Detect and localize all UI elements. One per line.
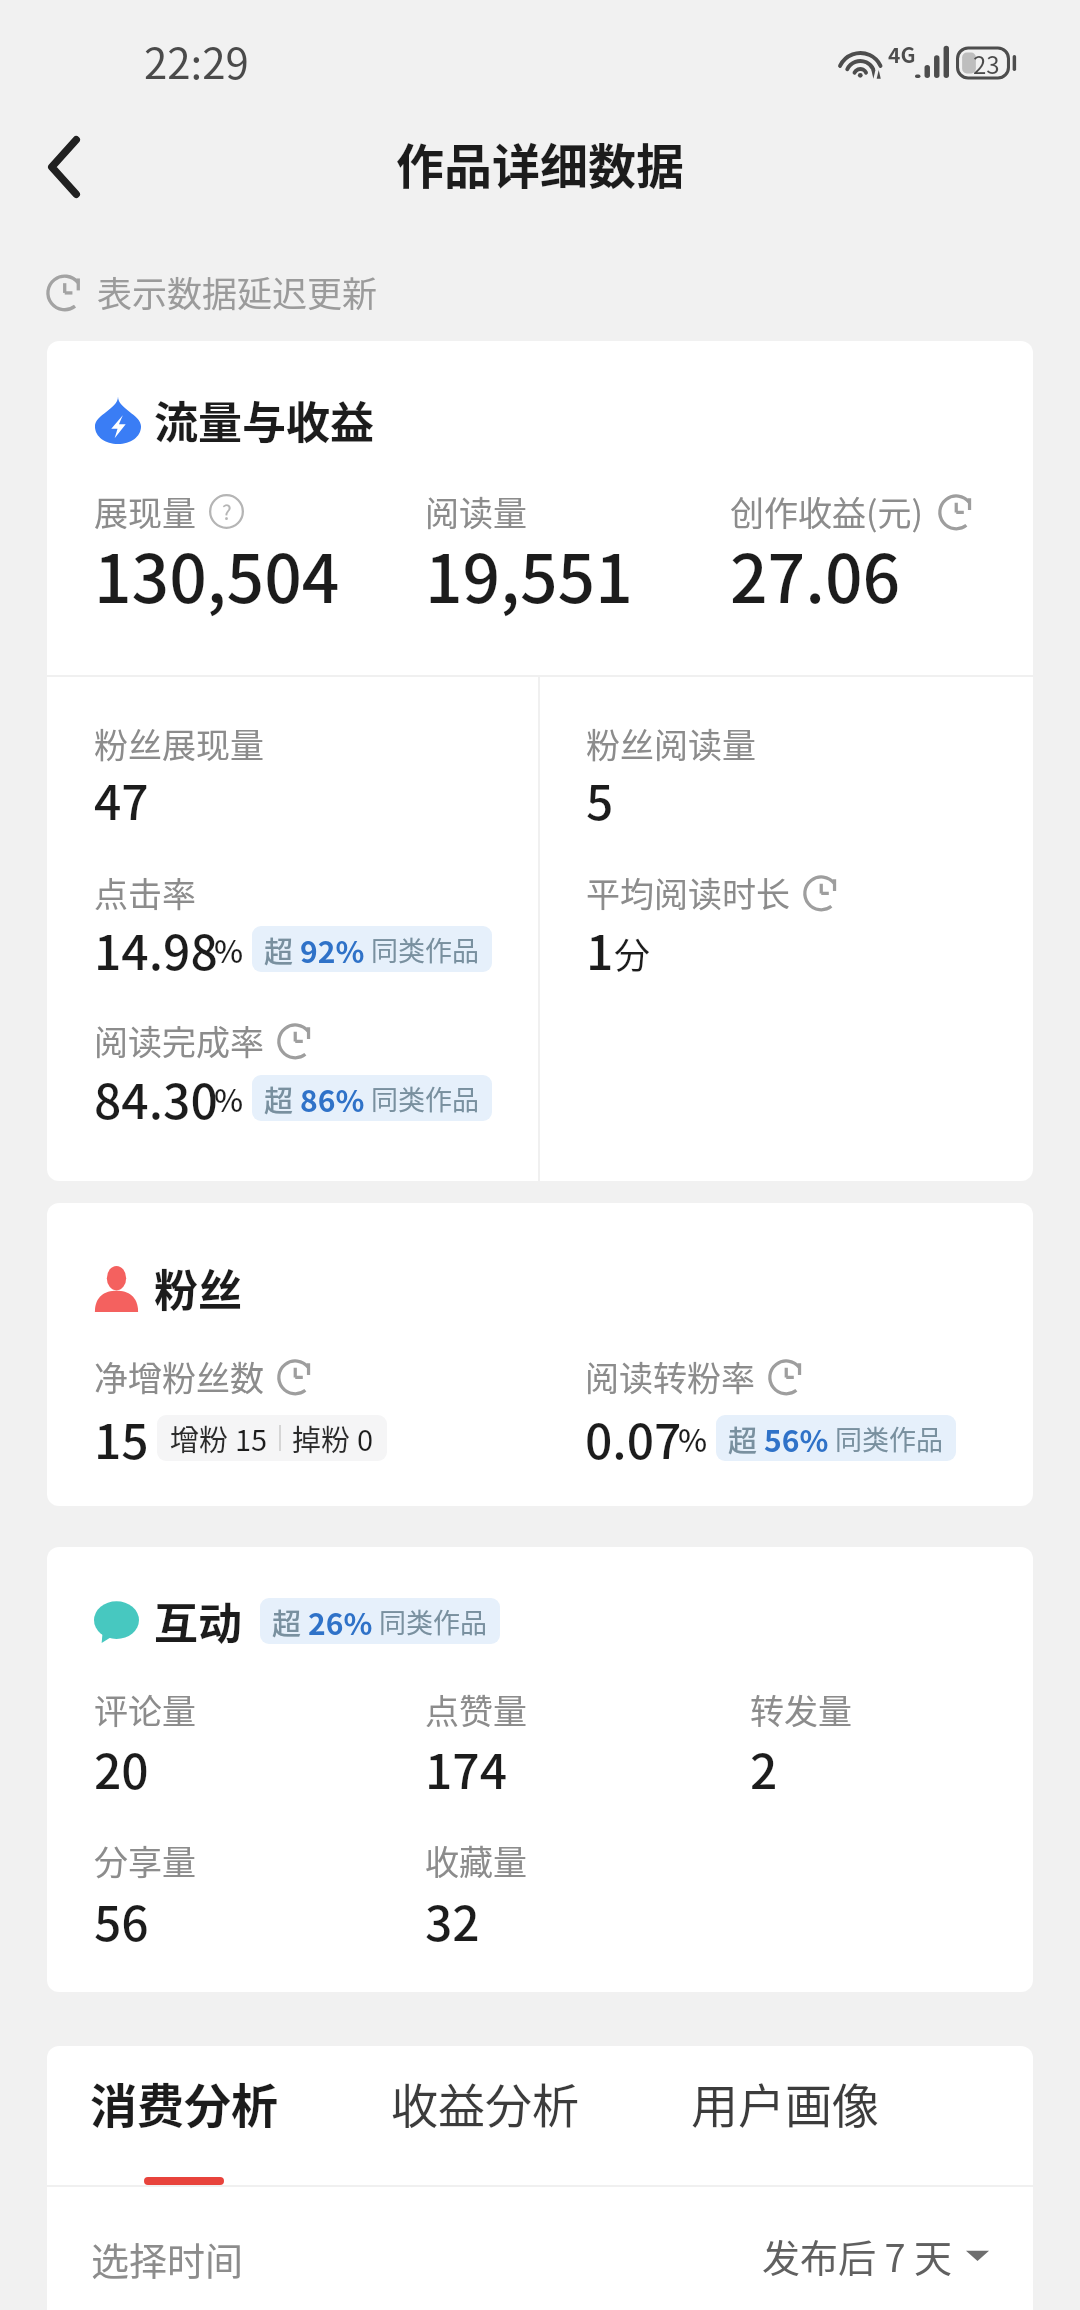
- staticText: 增粉: [170, 1417, 235, 1459]
- staticText: 26%: [308, 1600, 373, 1643]
- staticText: 130,504: [94, 526, 340, 622]
- staticText: ?: [222, 496, 232, 525]
- staticText: 4G: [888, 39, 916, 69]
- staticText: 同类作品: [365, 1079, 480, 1118]
- staticText: 阅读量: [425, 487, 527, 536]
- staticText: 粉丝展现量: [94, 719, 264, 768]
- staticText: 作品详细数据: [396, 128, 685, 198]
- staticText: 84.30: [94, 1063, 218, 1133]
- staticText: 点击率: [94, 868, 196, 917]
- staticText: 15: [235, 1417, 268, 1459]
- staticText: 19,551: [425, 526, 633, 622]
- staticText: 点赞量: [425, 1685, 527, 1734]
- staticText: 用户画像: [691, 2068, 879, 2136]
- staticText: 5: [586, 764, 614, 834]
- staticText: 收藏量: [425, 1836, 527, 1885]
- staticText: 阅读转粉率: [585, 1352, 755, 1401]
- staticText: 14.98: [94, 914, 218, 984]
- button[interactable]: Back: [16, 119, 112, 215]
- staticText: 粉丝阅读量: [586, 719, 756, 768]
- staticText: 86%: [300, 1077, 365, 1120]
- staticText: 分: [614, 927, 651, 979]
- staticText: 掉粉: [292, 1417, 357, 1459]
- staticText: 0.07: [585, 1403, 682, 1473]
- staticText: 1: [586, 914, 614, 984]
- staticText: 超: [264, 1078, 300, 1120]
- button[interactable]: 展现量说明: [209, 494, 244, 529]
- staticText: %: [214, 1076, 244, 1121]
- staticText: 收益分析: [391, 2068, 579, 2136]
- staticText: %: [678, 1416, 708, 1461]
- staticText: 创作收益(元): [730, 487, 923, 536]
- staticText: 平均阅读时长: [586, 868, 790, 917]
- staticText: 47: [94, 764, 149, 834]
- button[interactable]: 用户画像: [691, 2068, 879, 2185]
- staticText: 粉丝: [154, 1256, 242, 1320]
- staticText: 23: [973, 46, 1000, 81]
- staticText: 22:29: [144, 30, 249, 91]
- staticText: 分享量: [94, 1836, 196, 1885]
- staticText: 超: [728, 1418, 764, 1460]
- staticText: 56: [94, 1885, 149, 1955]
- staticText: 转发量: [750, 1685, 852, 1734]
- button[interactable]: 收益分析: [391, 2068, 579, 2185]
- button[interactable]: 发布后 7 天: [762, 2228, 989, 2283]
- staticText: 同类作品: [373, 1602, 488, 1641]
- staticText: 174: [425, 1733, 508, 1803]
- staticText: 表示数据延迟更新: [97, 266, 378, 317]
- staticText: %: [214, 927, 244, 972]
- staticText: 同类作品: [829, 1419, 944, 1458]
- staticText: 15: [94, 1403, 149, 1473]
- staticText: 0: [357, 1417, 374, 1459]
- staticText: 超: [264, 929, 300, 971]
- staticText: 27.06: [730, 526, 901, 622]
- staticText: 32: [425, 1885, 480, 1955]
- staticText: 发布后 7 天: [762, 2228, 953, 2283]
- staticText: 互动: [154, 1589, 242, 1653]
- staticText: 消费分析: [90, 2068, 278, 2136]
- staticText: 2: [750, 1733, 778, 1803]
- staticText: 净增粉丝数: [94, 1352, 264, 1401]
- staticText: 阅读完成率: [94, 1016, 264, 1065]
- staticText: 92%: [300, 928, 365, 971]
- button[interactable]: 消费分析: [90, 2068, 278, 2185]
- staticText: 56%: [764, 1417, 829, 1460]
- staticText: 20: [94, 1733, 149, 1803]
- staticText: 流量与收益: [154, 388, 374, 452]
- staticText: 展现量: [94, 487, 196, 536]
- staticText: 评论量: [94, 1685, 196, 1734]
- staticText: 同类作品: [365, 930, 480, 969]
- staticText: 超: [272, 1601, 308, 1643]
- staticText: 选择时间: [91, 2231, 244, 2286]
